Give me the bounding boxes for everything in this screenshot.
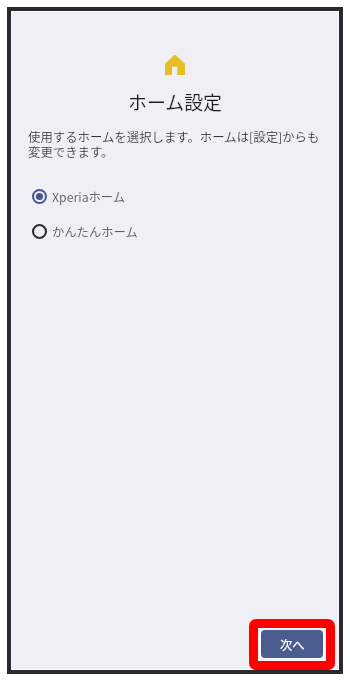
staticText: かんたんホーム (52, 223, 138, 241)
staticText: ホーム設定 (0, 88, 350, 115)
staticText: 次へ (280, 636, 305, 654)
button[interactable]: 次へ (261, 630, 323, 658)
staticText: Xperiaホーム (52, 188, 126, 206)
staticText: 使用するホームを選択します。ホームは[設定]からも 変更できます。 (28, 128, 320, 161)
button[interactable]: かんたんホーム (0, 214, 350, 249)
button[interactable]: Xperiaホーム (0, 179, 350, 214)
other: Home (165, 55, 185, 75)
